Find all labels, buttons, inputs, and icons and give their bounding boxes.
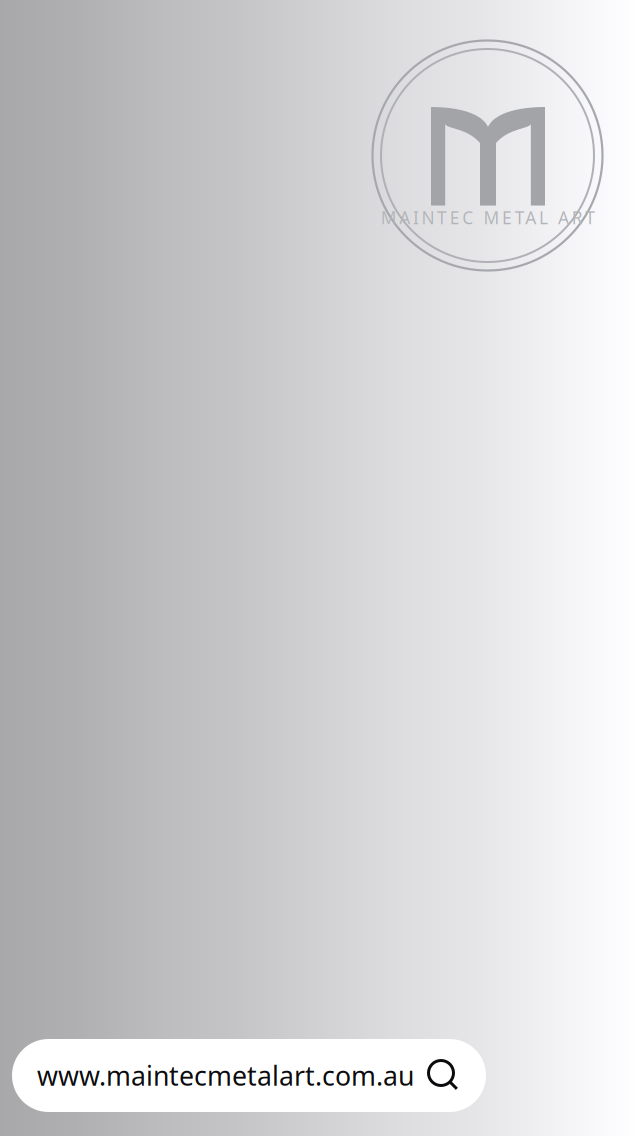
button[interactable]: www.maintecmetalart.com.au <box>12 1039 486 1112</box>
staticText: www.maintecmetalart.com.au <box>37 1058 414 1093</box>
staticText: MAINTEC METAL ART <box>381 206 595 229</box>
